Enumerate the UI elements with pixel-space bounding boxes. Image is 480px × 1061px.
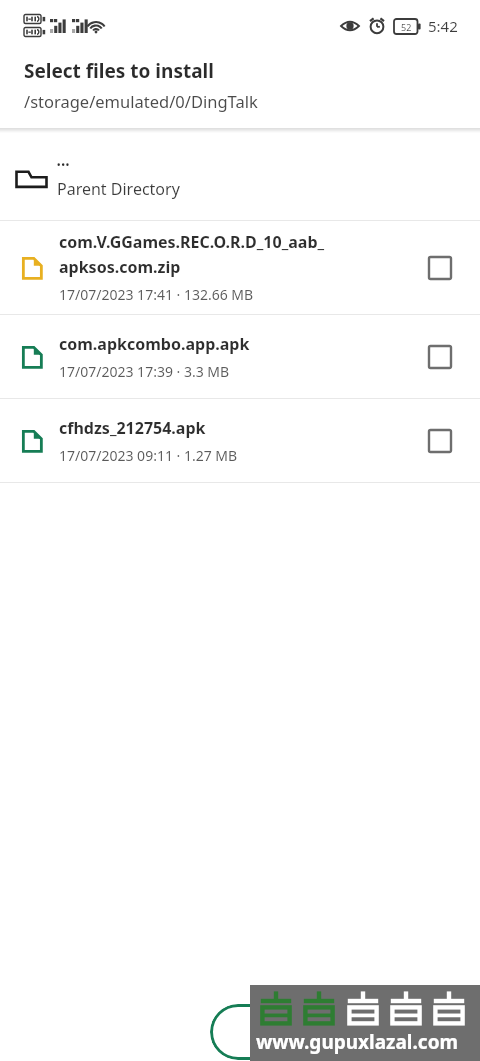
button[interactable]: ••• (0, 138, 480, 220)
button[interactable]: Cancel (210, 1004, 360, 1060)
staticText: Select files to install (24, 58, 214, 84)
button[interactable]: cfhdzs_212754.apk (0, 399, 480, 482)
staticText: 17/07/2023 17:39 · 3.3 MB (59, 362, 230, 381)
staticText: ••• (57, 158, 71, 170)
staticText: 5:42 (428, 16, 458, 36)
staticText: apksos.com.zip (59, 256, 181, 278)
staticText: 17/07/2023 09:11 · 1.27 MB (59, 446, 238, 465)
staticText: 52 (401, 21, 412, 33)
staticText: 17/07/2023 17:41 · 132.66 MB (59, 285, 254, 304)
staticText: com.V.GGames.REC.O.R.D_10_aab_ (59, 231, 325, 253)
button[interactable]: com.V.GGames.REC.O.R.D_10_aab_ (0, 221, 480, 314)
button[interactable]: Select file (412, 240, 468, 296)
staticText: com.apkcombo.app.apk (59, 333, 250, 355)
staticText: Parent Directory (57, 178, 180, 200)
staticText: Cancel (260, 1021, 311, 1043)
staticText: /storage/emulated/0/DingTalk (24, 90, 258, 112)
staticText: www.gupuxlazal.com (256, 1029, 459, 1055)
button[interactable]: com.apkcombo.app.apk (0, 315, 480, 398)
button[interactable]: Select file (412, 329, 468, 385)
button[interactable]: Select file (412, 413, 468, 469)
staticText: cfhdzs_212754.apk (59, 417, 206, 439)
